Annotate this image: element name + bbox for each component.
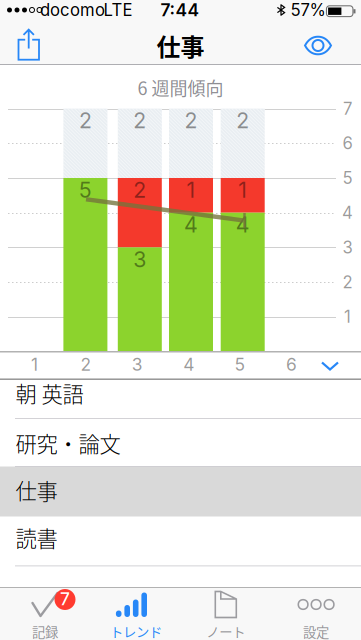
staticText: ノート bbox=[206, 622, 245, 640]
staticText: 2 bbox=[80, 354, 91, 375]
staticText: 研究・論文 bbox=[15, 428, 120, 458]
button[interactable]: 7 bbox=[0, 589, 90, 640]
staticText: 3 bbox=[132, 354, 143, 375]
staticText: 4 bbox=[342, 203, 353, 223]
staticText: 1 bbox=[186, 177, 195, 203]
staticText: 1 bbox=[344, 307, 351, 327]
staticText: 読書 bbox=[15, 522, 57, 553]
staticText: 記録 bbox=[32, 622, 58, 640]
button[interactable]: ノート bbox=[181, 589, 271, 640]
staticText: 2 bbox=[184, 108, 197, 133]
staticText: 7 bbox=[343, 98, 352, 119]
staticText: 5 bbox=[342, 168, 352, 188]
staticText: 4 bbox=[184, 212, 198, 238]
staticText: 5 bbox=[235, 354, 246, 375]
button[interactable]: 研究・論文 bbox=[0, 418, 361, 466]
staticText: 3 bbox=[133, 246, 146, 272]
staticText: 1 bbox=[31, 354, 38, 375]
staticText: 7:44 bbox=[160, 0, 199, 20]
staticText: 3 bbox=[342, 237, 352, 257]
button[interactable]: 読書 bbox=[0, 516, 361, 565]
button[interactable]: 設定 bbox=[271, 589, 361, 640]
button[interactable] bbox=[6, 27, 50, 63]
staticText: 設定 bbox=[303, 622, 329, 640]
staticText: 7 bbox=[60, 588, 70, 609]
button[interactable]: トレンド bbox=[90, 589, 180, 640]
staticText: 6 週間傾向 bbox=[137, 74, 223, 101]
staticText: 2 bbox=[79, 108, 92, 133]
staticText: 2 bbox=[342, 272, 352, 292]
staticText: docomo bbox=[40, 0, 105, 20]
staticText: 仕事 bbox=[156, 28, 204, 63]
staticText: 仕事 bbox=[15, 475, 57, 505]
staticText: 57% bbox=[290, 0, 325, 20]
staticText: 6 bbox=[342, 133, 352, 153]
staticText: 5 bbox=[79, 177, 92, 203]
button[interactable] bbox=[315, 354, 345, 376]
staticText: 2 bbox=[236, 108, 249, 133]
staticText: 2 bbox=[133, 177, 146, 203]
staticText: 2 bbox=[133, 108, 146, 133]
button[interactable]: 仕事 bbox=[0, 466, 361, 516]
staticText: トレンド bbox=[110, 622, 162, 640]
staticText: 4 bbox=[183, 354, 194, 375]
button[interactable]: 朝 英語 bbox=[0, 380, 361, 418]
staticText: 朝 英語 bbox=[15, 378, 83, 408]
staticText: 1 bbox=[238, 177, 247, 203]
button[interactable] bbox=[296, 26, 340, 64]
staticText: 6 bbox=[286, 354, 297, 375]
staticText: LTE bbox=[103, 0, 132, 20]
staticText: 4 bbox=[236, 212, 250, 238]
